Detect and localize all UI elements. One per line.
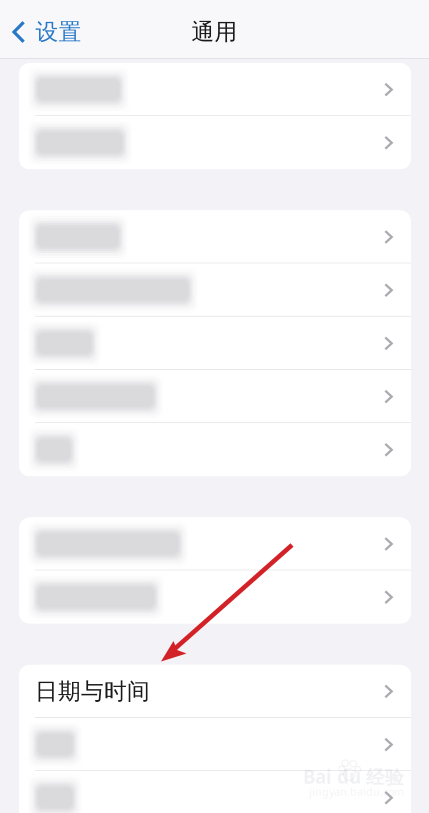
button[interactable] <box>19 571 411 624</box>
button[interactable] <box>19 423 411 476</box>
button[interactable]: 日期与时间 <box>19 665 411 718</box>
staticText: 日期与时间 <box>35 677 150 705</box>
button[interactable] <box>19 370 411 423</box>
staticText: Bai du 经验 <box>303 764 404 789</box>
staticText: 通用 <box>191 18 237 46</box>
button[interactable] <box>19 264 411 317</box>
button[interactable] <box>19 718 411 771</box>
button[interactable] <box>19 517 411 571</box>
staticText: 设置 <box>36 18 82 46</box>
button[interactable]: 设置 <box>0 0 100 58</box>
button[interactable] <box>19 63 411 116</box>
button[interactable] <box>19 317 411 370</box>
staticText: jingyan.baidu.com <box>309 784 404 799</box>
button[interactable] <box>19 210 411 264</box>
button[interactable] <box>19 116 411 169</box>
button[interactable] <box>19 771 411 813</box>
